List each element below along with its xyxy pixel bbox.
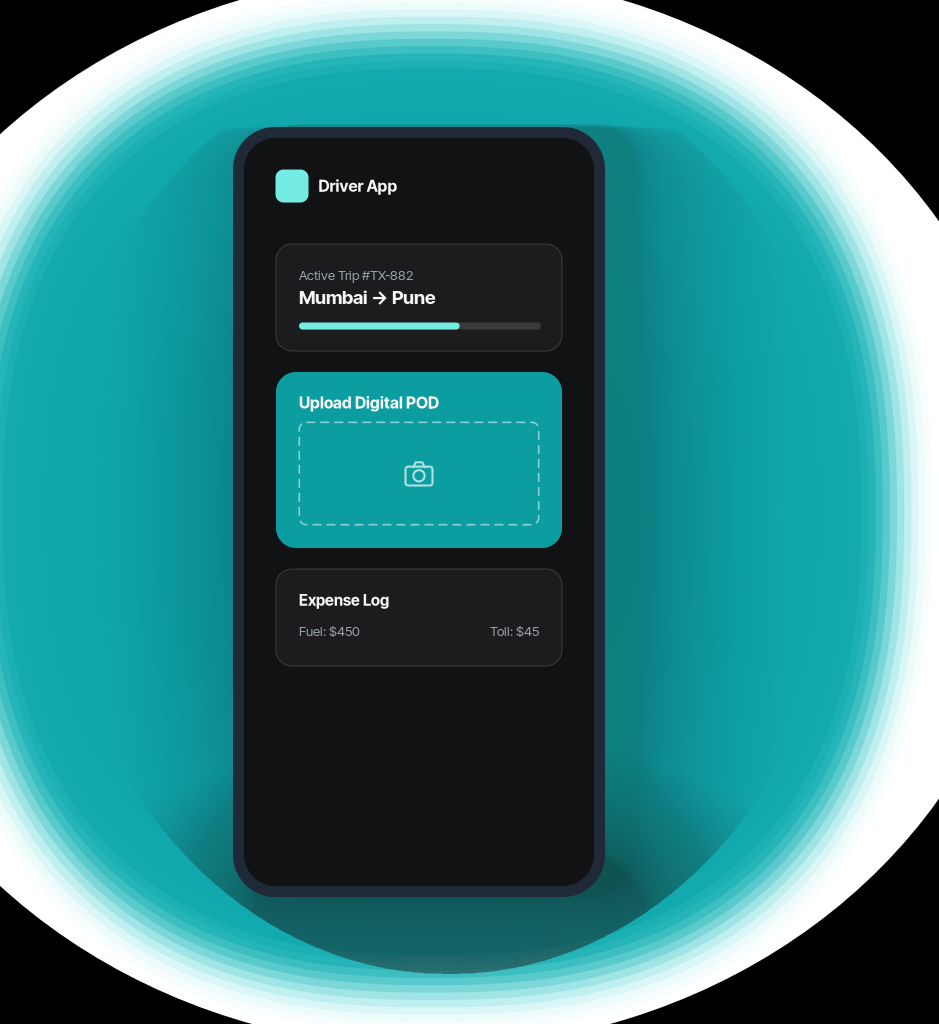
button[interactable]: Expense Log (276, 569, 562, 666)
staticText: Driver App (318, 176, 397, 196)
staticText: Expense Log (299, 591, 389, 610)
button[interactable]: Active Trip #TX-882 (276, 244, 562, 351)
button[interactable]: Driver App (275, 169, 397, 203)
staticText: Fuel: $450 (299, 623, 360, 639)
button[interactable]: Upload Digital POD (276, 372, 562, 548)
staticText: Active Trip #TX-882 (299, 267, 413, 283)
staticText: Toll: $45 (490, 623, 539, 639)
staticText: Mumbai → Pune (299, 286, 436, 309)
staticText: Upload Digital POD (299, 393, 439, 412)
